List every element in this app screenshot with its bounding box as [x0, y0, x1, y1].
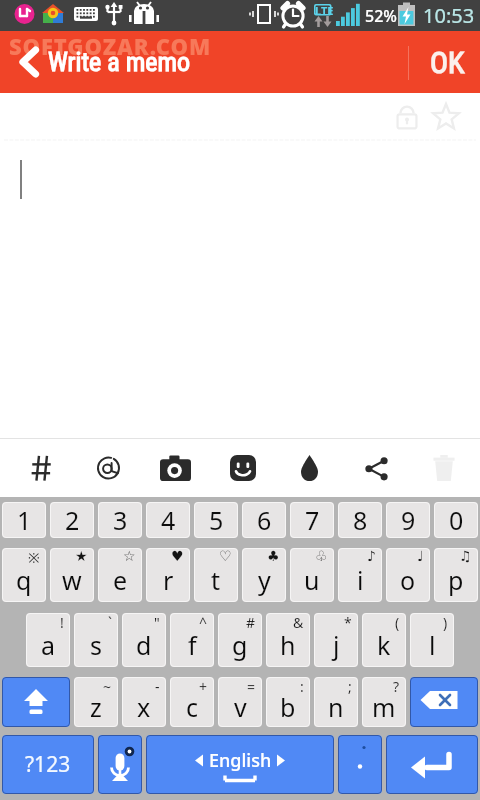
staticText: r: [163, 563, 174, 597]
button[interactable]: ♪: [338, 548, 382, 602]
button[interactable]: Enter: [386, 735, 478, 794]
button[interactable]: ♧: [290, 548, 334, 602]
staticText: q: [16, 563, 32, 597]
button[interactable]: Period: [338, 735, 382, 794]
button[interactable]: ": [122, 613, 166, 667]
button[interactable]: :: [266, 677, 310, 727]
button[interactable]: 8: [338, 502, 382, 538]
staticText: ♣: [267, 548, 280, 564]
button[interactable]: ?123: [2, 735, 94, 794]
staticText: ★: [75, 548, 88, 564]
button[interactable]: `: [74, 613, 118, 667]
staticText: -: [155, 677, 160, 696]
button[interactable]: ♥: [146, 548, 190, 602]
staticText: ^: [199, 613, 208, 632]
button[interactable]: ): [410, 613, 454, 667]
button[interactable]: ※: [2, 548, 46, 602]
staticText: c: [186, 690, 199, 724]
button[interactable]: -: [122, 677, 166, 727]
staticText: ♪: [367, 548, 376, 564]
button[interactable]: ★: [50, 548, 94, 602]
staticText: ): [443, 613, 448, 632]
button[interactable]: Share: [343, 438, 410, 497]
button[interactable]: 7: [290, 502, 334, 538]
staticText: 10:53: [423, 2, 475, 29]
button[interactable]: Write a memo: [0, 31, 205, 93]
staticText: v: [234, 690, 247, 724]
button[interactable]: Lock memo: [396, 104, 418, 130]
staticText: 8: [353, 503, 368, 537]
button[interactable]: (: [362, 613, 406, 667]
staticText: ♡: [219, 548, 232, 564]
button[interactable]: +: [170, 677, 214, 727]
staticText: LTE: [315, 3, 334, 18]
staticText: ;: [348, 677, 352, 696]
staticText: z: [90, 690, 102, 724]
button[interactable]: &: [266, 613, 310, 667]
staticText: 0: [449, 503, 464, 537]
staticText: :: [300, 677, 304, 696]
button[interactable]: 9: [386, 502, 430, 538]
staticText: 5: [209, 503, 224, 537]
staticText: ※: [28, 548, 40, 567]
staticText: f: [188, 628, 197, 662]
button[interactable]: ♡: [194, 548, 238, 602]
staticText: ♩: [417, 548, 424, 564]
button[interactable]: Shift: [2, 677, 70, 727]
staticText: 6: [257, 503, 272, 537]
button[interactable]: ^: [170, 613, 214, 667]
button[interactable]: ~: [74, 677, 118, 727]
button[interactable]: #: [218, 613, 262, 667]
button[interactable]: 6: [242, 502, 286, 538]
button[interactable]: OK: [408, 31, 480, 93]
button[interactable]: Backspace: [410, 677, 478, 727]
staticText: w: [62, 563, 82, 597]
staticText: 52%: [365, 5, 397, 27]
button[interactable]: ♩: [386, 548, 430, 602]
button[interactable]: Voice input: [98, 735, 142, 794]
button[interactable]: =: [218, 677, 262, 727]
button[interactable]: ♣: [242, 548, 286, 602]
staticText: &: [293, 613, 304, 632]
staticText: ": [154, 613, 160, 632]
button[interactable]: Favourite: [432, 104, 460, 130]
button[interactable]: ☆: [98, 548, 142, 602]
button[interactable]: *: [314, 613, 358, 667]
button[interactable]: 0: [434, 502, 478, 538]
staticText: =: [247, 677, 256, 696]
staticText: English: [209, 748, 272, 773]
staticText: `: [108, 613, 112, 632]
staticText: ♧: [315, 548, 328, 564]
staticText: ?123: [25, 750, 71, 779]
staticText: 4: [161, 503, 176, 537]
button[interactable]: 3: [98, 502, 142, 538]
staticText: m: [372, 690, 396, 724]
button[interactable]: English: [146, 735, 334, 794]
staticText: OK: [430, 45, 465, 80]
button[interactable]: Hashtag: [7, 438, 75, 497]
button[interactable]: 1: [2, 502, 46, 538]
staticText: j: [333, 628, 340, 662]
staticText: ☆: [123, 548, 136, 564]
staticText: x: [137, 690, 151, 724]
staticText: h: [280, 628, 296, 662]
button[interactable]: 2: [50, 502, 94, 538]
staticText: b: [280, 690, 296, 724]
staticText: i: [357, 563, 364, 597]
staticText: ~: [103, 677, 112, 696]
staticText: 7: [305, 503, 320, 537]
button[interactable]: ;: [314, 677, 358, 727]
staticText: 1: [17, 503, 32, 537]
button[interactable]: Camera: [142, 438, 209, 497]
button[interactable]: Delete: [410, 438, 477, 497]
button[interactable]: Emoticon: [209, 438, 276, 497]
button[interactable]: 4: [146, 502, 190, 538]
button[interactable]: ♫: [434, 548, 478, 602]
button[interactable]: ?: [362, 677, 406, 727]
button[interactable]: 5: [194, 502, 238, 538]
button[interactable]: Ink: [276, 438, 343, 497]
button[interactable]: Mention: [75, 438, 142, 497]
button[interactable]: !: [26, 613, 70, 667]
staticText: 9: [401, 503, 416, 537]
staticText: 3: [113, 503, 128, 537]
